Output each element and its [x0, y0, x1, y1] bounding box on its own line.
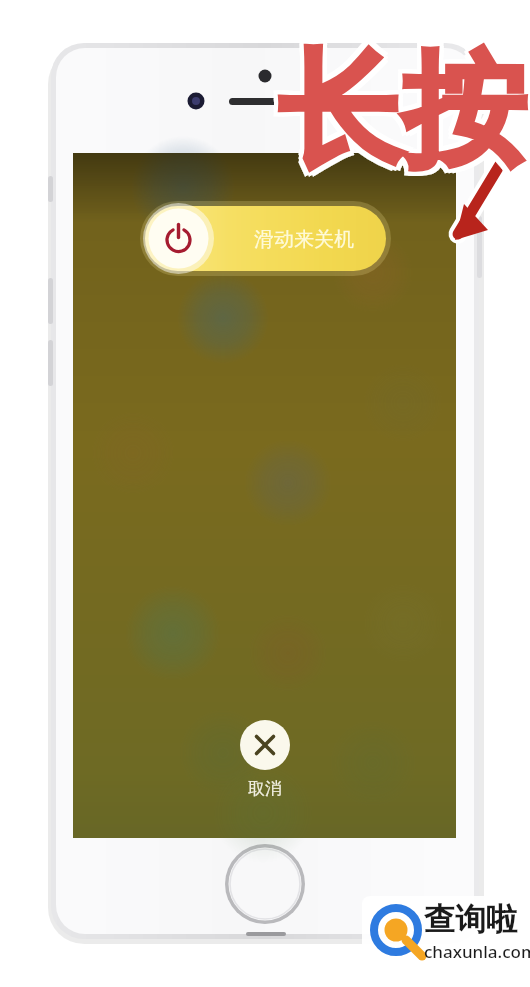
button[interactable]: 取消 [225, 718, 305, 804]
staticText: 取消 [248, 778, 282, 799]
staticText: 长按 [278, 38, 526, 194]
staticText: 查询啦 [424, 900, 517, 939]
staticText: 滑动来关机 [254, 227, 354, 252]
staticText: 长按 [278, 34, 526, 190]
staticText: 长按 [274, 38, 522, 194]
staticText: 长按 [282, 38, 530, 194]
staticText: chaxunla.com [424, 940, 530, 963]
staticText: 长按 [274, 34, 522, 190]
button[interactable]: 滑动来关机 [145, 206, 386, 271]
staticText: 长按 [278, 30, 526, 186]
staticText: 长按 [282, 34, 530, 190]
staticText: 长按 [274, 30, 522, 186]
staticText: 长按 [282, 30, 530, 186]
